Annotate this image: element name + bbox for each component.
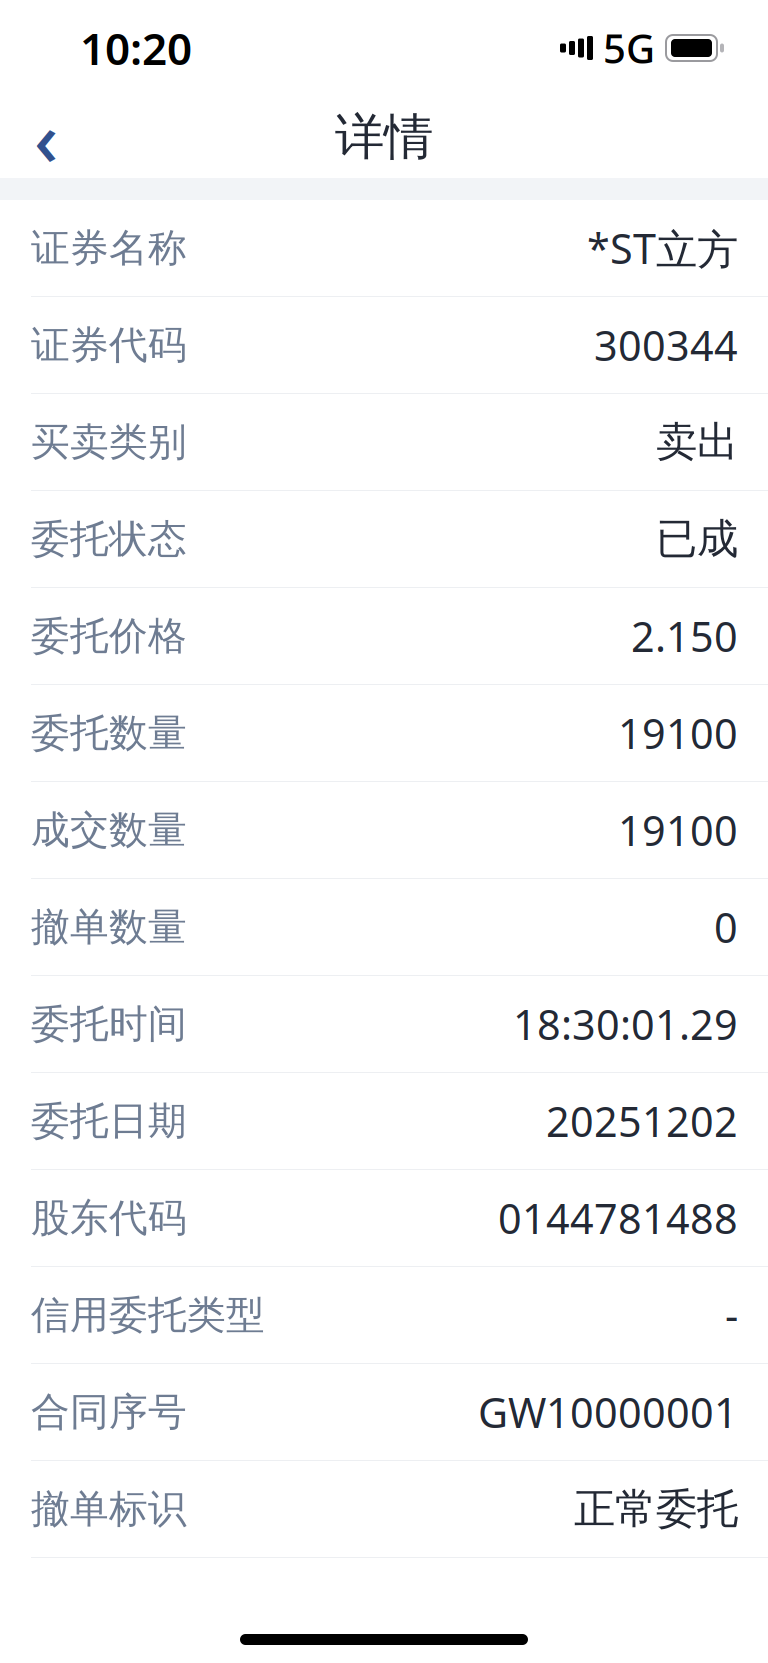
staticText: 委托数量 [31,709,187,757]
staticText: 委托状态 [31,515,187,563]
staticText: 0144781488 [498,1191,738,1245]
staticText: 20251202 [546,1094,738,1148]
staticText: 信用委托类型 [31,1291,265,1339]
staticText: 证券代码 [31,321,187,369]
staticText: 撤单标识 [31,1485,187,1533]
staticText: 成交数量 [31,806,187,854]
staticText: 卖出 [656,417,738,467]
staticText: 2.150 [631,609,738,663]
staticText: 5G [603,21,655,74]
staticText: 委托时间 [31,1000,187,1048]
staticText: 正常委托 [574,1484,738,1534]
staticText: - [725,1288,738,1342]
staticText: 撤单数量 [31,903,187,951]
staticText: 委托日期 [31,1097,187,1145]
staticText: 股东代码 [31,1194,187,1242]
staticText: GW10000001 [478,1385,738,1439]
staticText: 19100 [618,803,738,857]
staticText: *ST立方 [587,220,738,275]
staticText: 18:30:01.29 [513,997,738,1051]
staticText: 证券名称 [31,224,187,272]
staticText: 委托价格 [31,612,187,660]
staticText: ‹ [34,87,58,187]
staticText: 合同序号 [31,1388,187,1436]
staticText: 300344 [594,318,738,372]
staticText: 10:20 [80,19,192,77]
staticText: 已成 [656,514,738,564]
staticText: 详情 [335,107,433,167]
button[interactable]: Back [0,96,92,178]
staticText: 买卖类别 [31,418,187,466]
staticText: 19100 [618,706,738,760]
staticText: 0 [714,900,738,954]
